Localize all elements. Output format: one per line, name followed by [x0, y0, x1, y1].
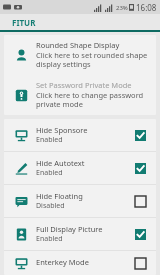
staticText: Enabled: [36, 168, 63, 178]
button[interactable]: Full Display Picture: [4, 218, 156, 250]
button[interactable]: Unchecked: [135, 196, 146, 207]
button[interactable]: Hide Floating: [4, 185, 156, 217]
staticText: Click here to set rounded shape display …: [36, 50, 148, 70]
staticText: Disabled: [36, 201, 65, 211]
button[interactable]: Checked: [135, 130, 146, 141]
staticText: Hide Autotext: [36, 158, 85, 168]
button[interactable]: Enterkey Mode: [4, 251, 156, 275]
staticText: 16:08: [136, 2, 157, 13]
staticText: Enabled: [36, 135, 63, 145]
staticText: 23%: [116, 4, 128, 12]
button[interactable]: Hide Autotext: [4, 152, 156, 184]
button[interactable]: Checked: [135, 229, 146, 240]
button[interactable]: Rounded Shape Display: [4, 35, 156, 75]
staticText: Hide Floating: [36, 191, 83, 201]
staticText: Enabled: [36, 234, 63, 244]
staticText: Hide Sponsore: [36, 125, 88, 135]
staticText: Set Password Private Mode: [36, 80, 132, 90]
staticText: Full Display Picture: [36, 224, 103, 234]
button[interactable]: Hide Sponsore: [4, 119, 156, 151]
staticText: FITUR: [12, 17, 36, 28]
button[interactable]: Set Password Private Mode: [4, 75, 156, 115]
staticText: Rounded Shape Display: [36, 40, 120, 50]
staticText: Enterkey Mode: [36, 257, 89, 267]
staticText: Click here to change password private mo…: [36, 90, 148, 110]
button[interactable]: Unchecked: [135, 258, 146, 269]
button[interactable]: Checked: [135, 163, 146, 174]
